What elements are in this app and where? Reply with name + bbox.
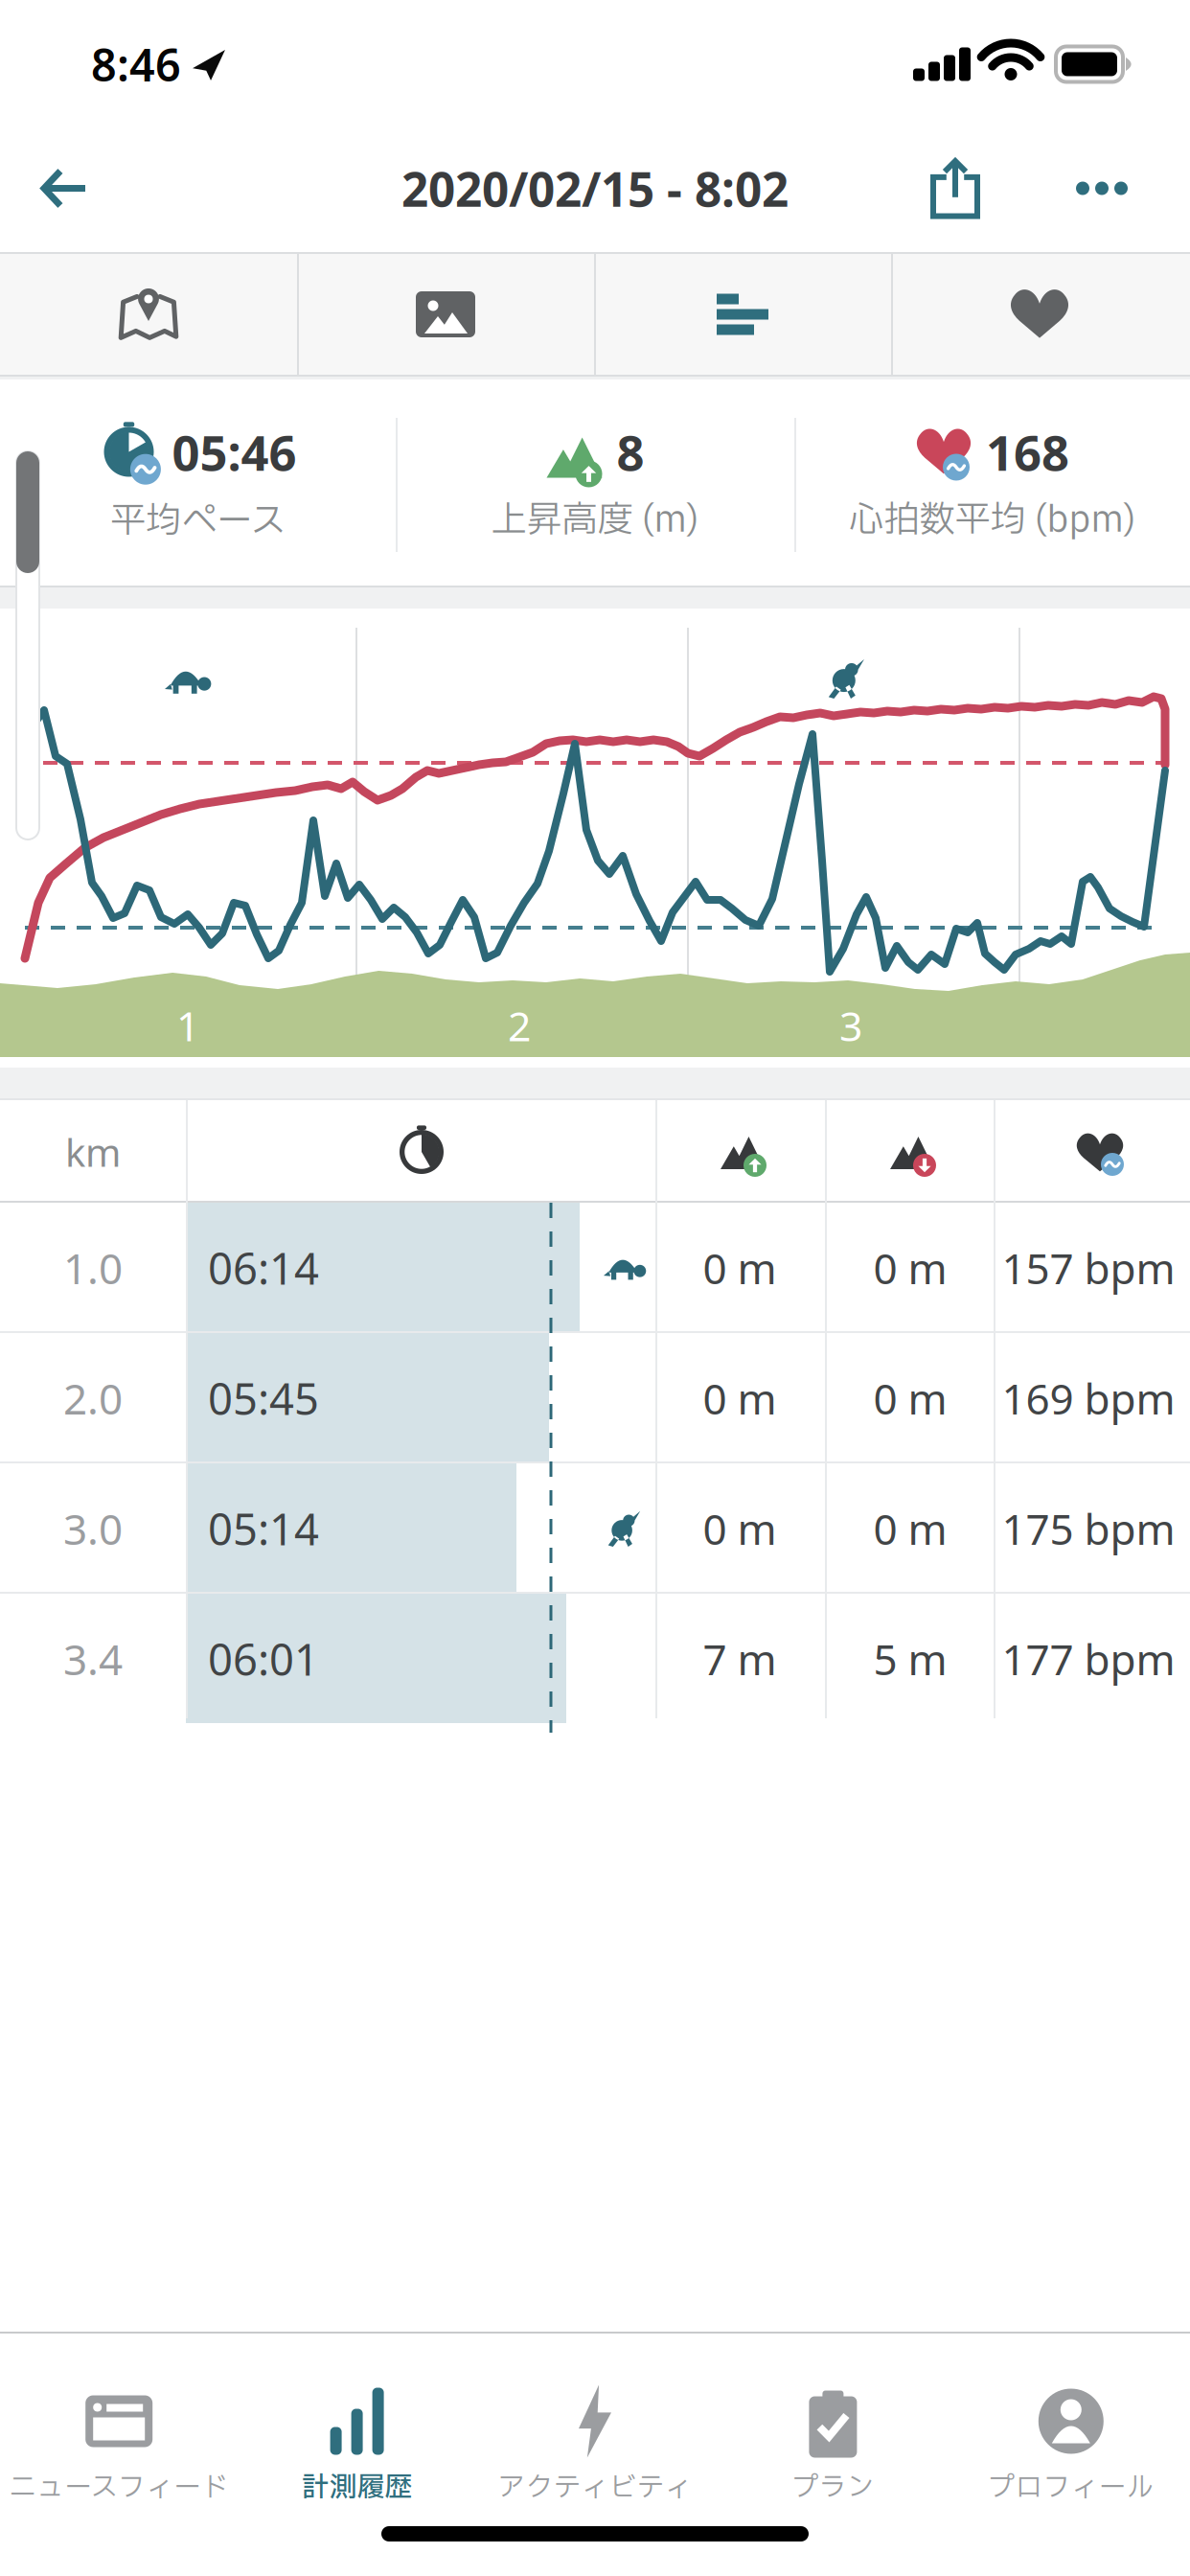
staticText: 2 bbox=[508, 998, 531, 1053]
staticText: 05:46 bbox=[172, 420, 297, 484]
staticText: 上昇高度 (m) bbox=[491, 494, 699, 547]
staticText: 3.4 bbox=[63, 1631, 123, 1687]
staticText: 06:14 bbox=[208, 1239, 319, 1297]
staticText: 05:14 bbox=[208, 1500, 319, 1557]
staticText: km bbox=[65, 1126, 121, 1177]
staticText: ニュースフィード bbox=[9, 2467, 229, 2508]
staticText: 3.0 bbox=[63, 1501, 123, 1557]
button[interactable]: アクティビティ bbox=[476, 2357, 714, 2539]
staticText: 3 bbox=[839, 998, 862, 1053]
staticText: 0 m bbox=[873, 1240, 947, 1296]
button[interactable]: Like bbox=[891, 254, 1188, 375]
staticText: 8:46 bbox=[91, 34, 181, 94]
staticText: 168 bbox=[986, 420, 1069, 484]
staticText: 7 m bbox=[703, 1631, 777, 1687]
staticText: 0 m bbox=[873, 1370, 947, 1426]
staticText: 1 bbox=[176, 998, 199, 1053]
staticText: 心拍数平均 (bpm) bbox=[848, 494, 1136, 547]
staticText: 157 bpm bbox=[1002, 1240, 1175, 1296]
staticText: 2.0 bbox=[63, 1370, 123, 1426]
button[interactable]: Stats bbox=[594, 254, 891, 375]
staticText: プロフィール bbox=[988, 2467, 1154, 2508]
staticText: 8 bbox=[617, 420, 644, 484]
staticText: 平均ペース bbox=[110, 495, 286, 549]
staticText: 1.0 bbox=[63, 1240, 123, 1296]
button[interactable]: Map bbox=[0, 254, 297, 375]
button[interactable]: Share bbox=[933, 134, 977, 243]
staticText: 177 bpm bbox=[1002, 1631, 1175, 1687]
staticText: プラン bbox=[791, 2467, 875, 2508]
staticText: アクティビティ bbox=[498, 2467, 692, 2508]
button[interactable]: プロフィール bbox=[952, 2357, 1190, 2539]
staticText: 5 m bbox=[873, 1631, 947, 1687]
button[interactable]: 計測履歴 bbox=[238, 2357, 476, 2539]
staticText: 06:01 bbox=[208, 1630, 319, 1688]
staticText: 0 m bbox=[703, 1370, 777, 1426]
staticText: 05:45 bbox=[208, 1369, 319, 1427]
button[interactable]: ニュースフィード bbox=[0, 2357, 238, 2539]
button[interactable]: Photos bbox=[297, 254, 594, 375]
staticText: 0 m bbox=[703, 1501, 777, 1557]
staticText: 169 bpm bbox=[1002, 1370, 1175, 1426]
staticText: 0 m bbox=[703, 1240, 777, 1296]
button[interactable]: プラン bbox=[714, 2357, 952, 2539]
staticText: 2020/02/15 - 8:02 bbox=[401, 157, 789, 220]
staticText: 0 m bbox=[873, 1501, 947, 1557]
button[interactable]: Back bbox=[0, 133, 85, 244]
button[interactable]: More bbox=[977, 134, 1190, 243]
staticText: 175 bpm bbox=[1002, 1501, 1175, 1557]
staticText: 計測履歴 bbox=[301, 2467, 413, 2508]
